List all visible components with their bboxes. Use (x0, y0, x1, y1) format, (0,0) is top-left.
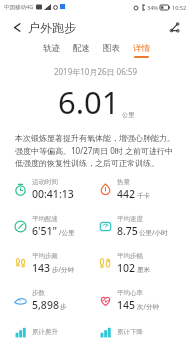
staticText: 平均心率 (117, 289, 143, 297)
staticText: 步/分钟 (52, 265, 74, 274)
staticText: /公里 (59, 228, 75, 237)
button[interactable]: 平均心率 (99, 289, 191, 312)
staticText: 中国移动4G (4, 3, 34, 11)
staticText: 公里/小时 (139, 228, 168, 237)
staticText: 千卡 (137, 192, 150, 200)
button[interactable]: 图表 (102, 43, 121, 58)
staticText: 厘米 (137, 266, 150, 274)
staticText: 户外跑步 (28, 20, 76, 35)
staticText: 145 (117, 298, 136, 312)
staticText: 442 (117, 187, 136, 201)
button[interactable]: 平均配速 (14, 215, 95, 238)
button[interactable]: 平均速度 (99, 215, 191, 238)
staticText: 公里 (122, 111, 134, 119)
button[interactable]: 热量 (99, 178, 191, 201)
staticText: 143 (32, 261, 51, 275)
button[interactable]: 详情 (132, 43, 151, 58)
staticText: 步 (60, 303, 67, 311)
staticText: 8.75 (117, 224, 138, 238)
button[interactable]: 配速 (72, 43, 91, 58)
staticText: 6.01 (58, 81, 120, 123)
staticText: 102 (117, 261, 136, 275)
staticText: 平均步幅 (117, 252, 143, 260)
staticText: 10:52 (172, 4, 187, 11)
button[interactable]: 累计爬升 (14, 326, 95, 339)
staticText: 图表 (103, 43, 120, 54)
staticText: 热量 (117, 178, 130, 186)
staticText: 34% (147, 4, 158, 11)
button[interactable]: 平均步频 (14, 252, 95, 275)
staticText: 轨迹 (43, 43, 60, 54)
button[interactable]: 轨迹 (42, 43, 61, 58)
staticText: 平均速度 (117, 215, 143, 223)
staticText: 00:41:13 (32, 187, 74, 201)
staticText: 累计下降 (117, 328, 143, 336)
button[interactable]: 返回 (8, 18, 26, 36)
staticText: 次/分钟 (137, 302, 159, 311)
staticText: 2019年10月26日 06:59 (0, 66, 191, 77)
staticText: 累计爬升 (32, 328, 58, 336)
staticText: 5,898 (32, 298, 59, 312)
button[interactable]: 运动时间 (14, 178, 95, 201)
staticText: 详情 (133, 43, 150, 54)
button[interactable]: 分享 (165, 18, 183, 36)
staticText: 配速 (73, 43, 90, 54)
staticText: 6'51" (32, 224, 58, 238)
button[interactable]: 平均步幅 (99, 252, 191, 275)
staticText: 运动时间 (32, 178, 58, 186)
staticText: 平均步频 (32, 252, 58, 260)
staticText: 平均配速 (32, 215, 58, 223)
button[interactable]: 步数 (14, 289, 95, 312)
staticText: 步数 (32, 289, 45, 297)
button[interactable]: 累计下降 (99, 326, 191, 339)
staticText: 本次锻炼显著提升有氧体能，增强心肺能力。强度中等偏高。10/27周日 0时 之前… (15, 133, 176, 169)
